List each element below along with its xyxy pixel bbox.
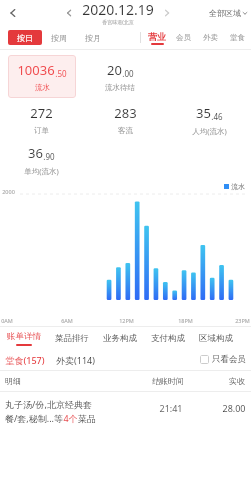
button[interactable]: 堂食	[224, 26, 251, 49]
button[interactable]: 10036	[8, 55, 76, 98]
staticText: 堂食	[230, 33, 245, 42]
staticText: 按日	[17, 33, 33, 43]
button[interactable]: 菜品排行	[48, 327, 96, 349]
staticText: 客流	[118, 126, 133, 135]
button[interactable]: 外卖(114)	[56, 354, 95, 366]
staticText: 272	[30, 104, 53, 122]
staticText: 账单详情	[7, 331, 41, 342]
staticText: 营业	[148, 31, 166, 42]
button[interactable]: 支付构成	[144, 327, 192, 349]
button[interactable]: 按周	[42, 30, 76, 45]
button[interactable]: 20	[76, 55, 163, 98]
staticText: 明细	[5, 376, 21, 386]
staticText: 10036	[17, 61, 55, 79]
staticText: 单均(流水)	[24, 166, 59, 176]
staticText: 只看会员	[212, 354, 246, 365]
staticText: 2020.12.19	[82, 0, 154, 19]
button[interactable]: 36	[0, 144, 83, 178]
staticText: 35	[196, 104, 211, 122]
staticText: 菜品	[78, 413, 96, 424]
button[interactable]: 283	[83, 104, 167, 140]
button[interactable]: 外卖	[197, 26, 224, 49]
staticText: 283	[114, 104, 137, 122]
staticText: 业务构成	[103, 333, 137, 344]
staticText: 4个	[63, 412, 78, 424]
button[interactable]: 按日	[8, 30, 42, 45]
staticText: 堂食(157)	[5, 354, 45, 366]
staticText: 外卖(114)	[56, 354, 95, 366]
staticText: 2000	[2, 188, 15, 195]
staticText: .50	[55, 68, 67, 79]
staticText: 香宫味道(北京	[102, 19, 134, 26]
staticText: 18PM	[178, 317, 193, 324]
staticText: 结账时间	[152, 376, 184, 386]
button[interactable]: 35	[167, 104, 251, 140]
button[interactable]: Previous day	[60, 4, 78, 22]
staticText: 0AM	[1, 317, 13, 324]
staticText: 按月	[85, 33, 101, 43]
staticText: 人均(流水)	[192, 126, 227, 136]
staticText: 支付构成	[151, 333, 185, 344]
staticText: 23PM	[235, 317, 250, 324]
staticText: 36	[28, 144, 43, 162]
staticText: .00	[122, 68, 134, 79]
staticText: 全部区域	[209, 8, 241, 18]
staticText: 20	[107, 61, 122, 79]
button[interactable]: 全部区域	[209, 8, 248, 18]
staticText: 流水	[35, 83, 50, 92]
button[interactable]: 按月	[76, 30, 110, 45]
button[interactable]: Back	[0, 0, 26, 26]
staticText: 28.00	[222, 402, 246, 414]
button[interactable]: 只看会员	[200, 354, 246, 365]
staticText: 流水	[231, 182, 245, 191]
button[interactable]: 区域构成	[192, 327, 240, 349]
button[interactable]: 业务构成	[96, 327, 144, 349]
staticText: 会员	[176, 33, 191, 42]
button[interactable]: 账单详情	[0, 327, 48, 349]
button[interactable]: 会员	[170, 26, 197, 49]
staticText: 12PM	[119, 317, 134, 324]
staticText: 订单	[34, 126, 49, 135]
button[interactable]: Next day	[158, 4, 176, 22]
button[interactable]: 堂食(157)	[5, 354, 45, 366]
staticText: 流水待结	[105, 83, 135, 92]
staticText: .46	[211, 111, 223, 122]
staticText: 按周	[51, 33, 67, 43]
button[interactable]: 营业	[143, 26, 170, 49]
staticText: .90	[43, 151, 55, 162]
staticText: 菜品排行	[55, 333, 89, 344]
staticText: 21:41	[159, 402, 183, 414]
staticText: 6AM	[61, 317, 73, 324]
staticText: 区域构成	[199, 333, 233, 344]
button[interactable]: 丸子汤/份,北京经典套	[0, 392, 251, 434]
staticText: 外卖	[203, 33, 218, 42]
staticText: 实收	[229, 376, 245, 386]
staticText: 餐/套,秘制...等	[5, 412, 63, 424]
button[interactable]: 272	[0, 104, 83, 140]
staticText: 丸子汤/份,北京经典套	[5, 398, 92, 410]
